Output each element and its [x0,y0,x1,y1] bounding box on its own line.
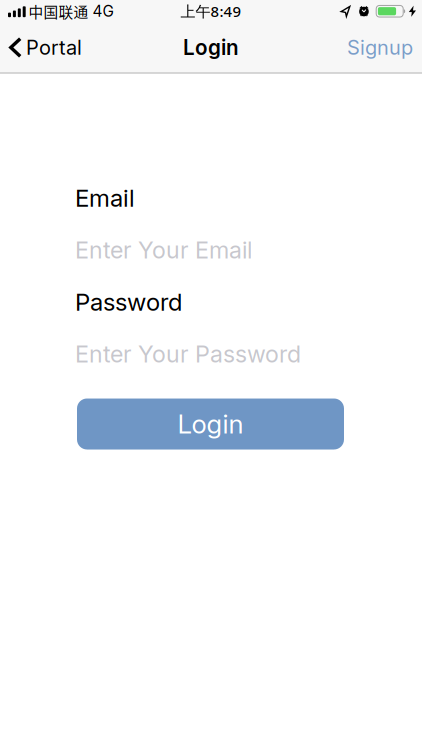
staticText: 中国联通 [28,1,88,22]
staticText: 4G [92,2,113,21]
staticText: Email [75,183,135,212]
staticText: Login [177,408,243,440]
staticText: Password [75,287,182,316]
staticText: Enter Your Email [75,236,252,264]
staticText: Login [183,35,239,60]
staticText: Signup [347,35,413,60]
staticText: Portal [26,35,82,60]
staticText: 上午8:49 [180,1,241,21]
staticText: Enter Your Password [75,340,301,368]
